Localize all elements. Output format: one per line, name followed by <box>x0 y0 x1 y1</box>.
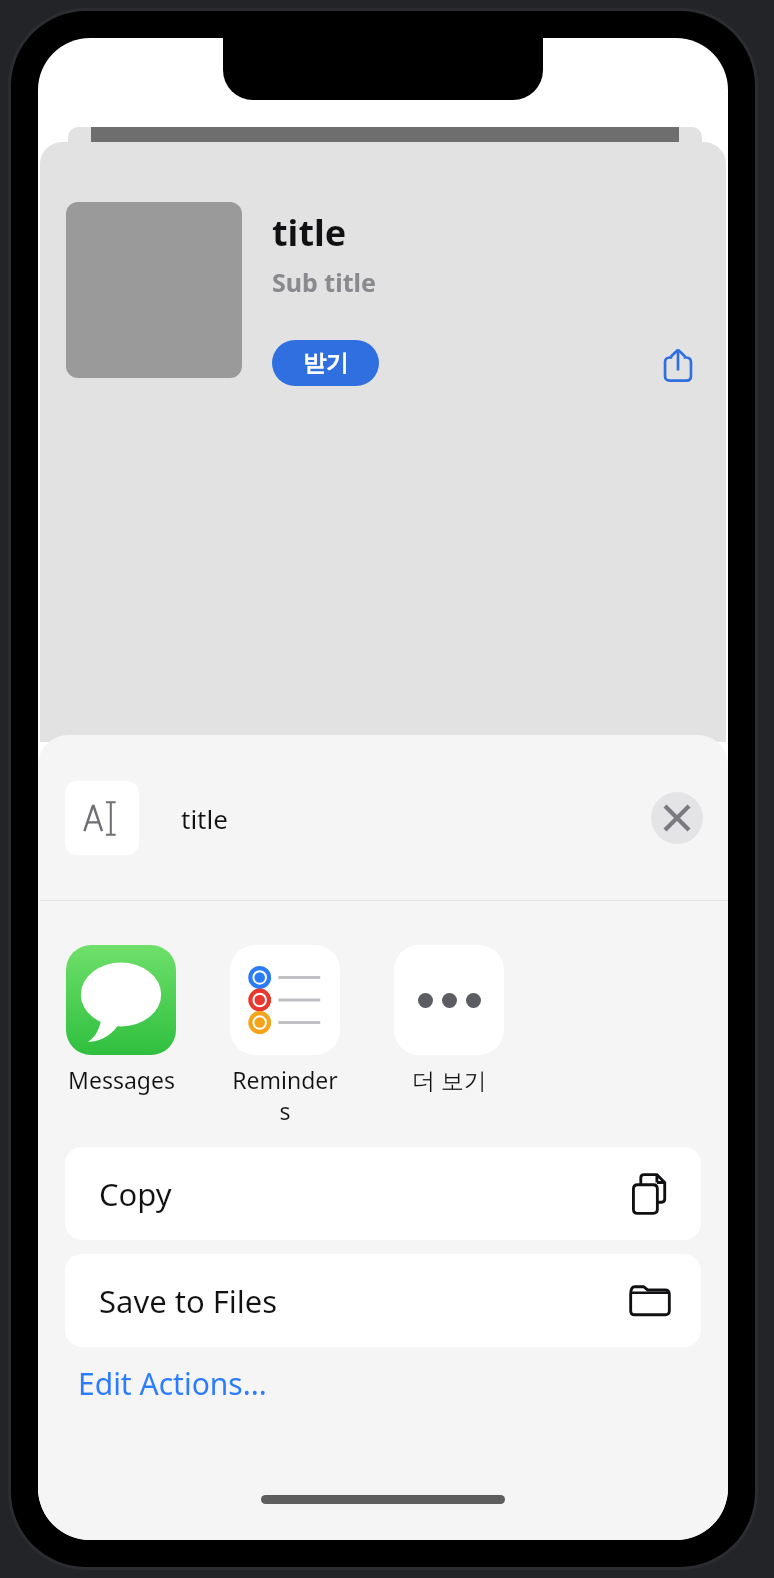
button[interactable]: Reminders <box>229 945 341 1126</box>
staticText: Sub title <box>272 265 376 299</box>
staticText: Save to Files <box>99 1280 278 1322</box>
button[interactable]: Close <box>651 792 703 844</box>
staticText: Edit Actions... <box>78 1363 267 1404</box>
button[interactable]: Share <box>652 338 704 390</box>
button[interactable]: title <box>38 763 728 873</box>
button[interactable]: Edit Actions... <box>78 1363 267 1404</box>
button[interactable]: Messages <box>65 945 177 1095</box>
button[interactable]: 받기 <box>272 340 379 386</box>
button[interactable]: Copy <box>65 1147 701 1240</box>
staticText: Messages <box>68 1064 175 1095</box>
staticText: title <box>181 801 228 836</box>
staticText: 더 보기 <box>412 1064 487 1095</box>
staticText: title <box>272 208 347 257</box>
button[interactable]: Save to Files <box>65 1254 701 1347</box>
staticText: Copy <box>99 1173 172 1215</box>
staticText: 받기 <box>303 349 349 378</box>
button[interactable]: 더 보기 <box>393 945 505 1095</box>
staticText: Reminders <box>229 1064 341 1126</box>
